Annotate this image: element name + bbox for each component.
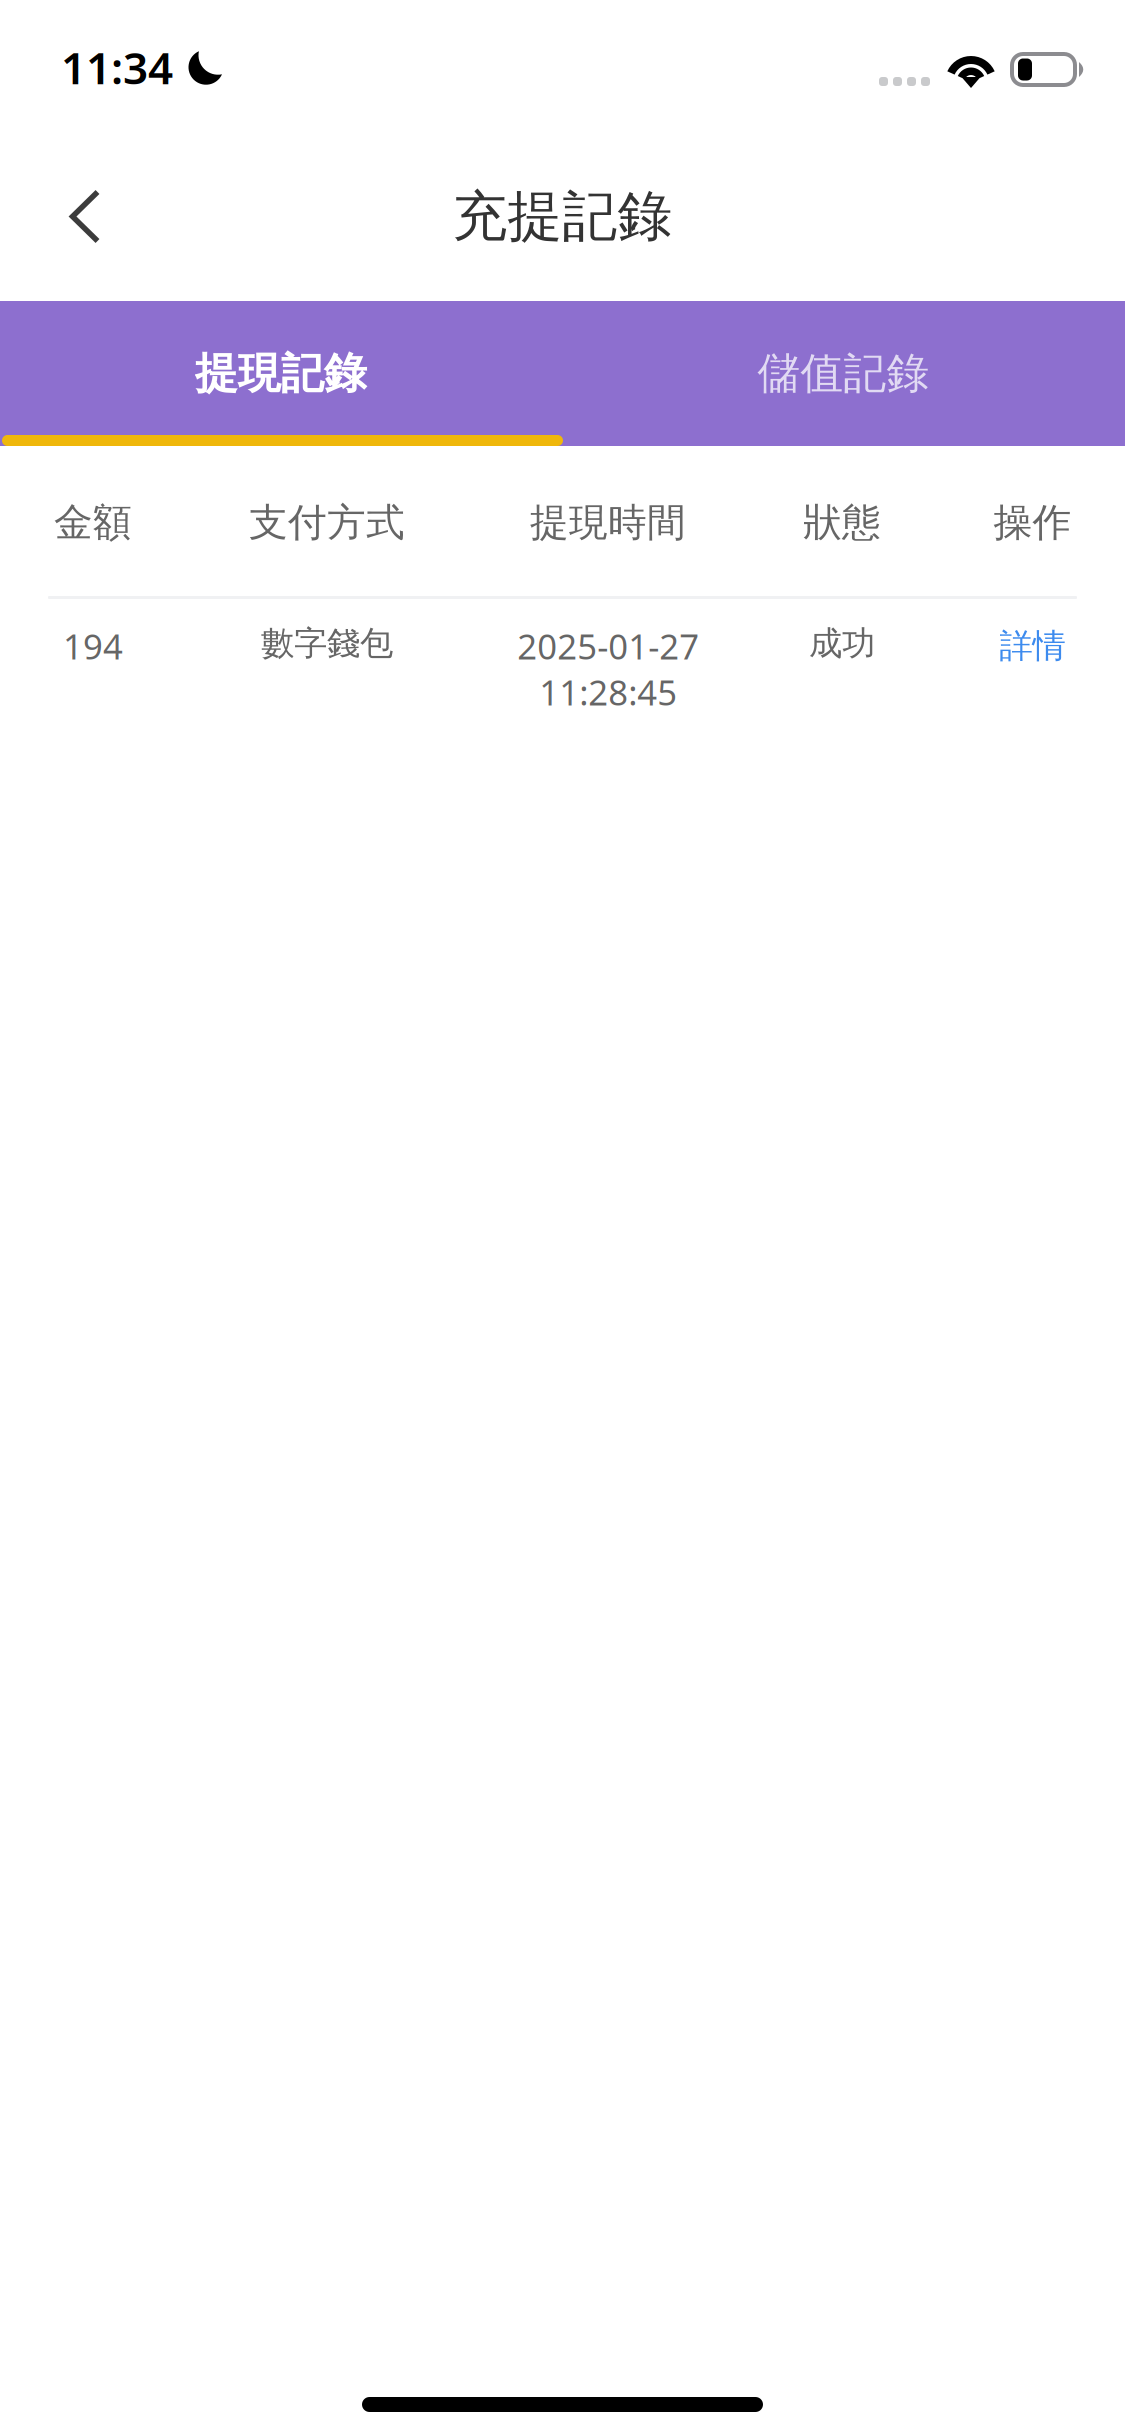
button[interactable]: 儲值記錄 [562, 301, 1125, 446]
staticText: 金額 [54, 499, 132, 546]
button[interactable]: 提現記錄 [0, 301, 562, 446]
button[interactable]: Back [30, 156, 140, 276]
staticText: 操作 [993, 499, 1071, 546]
staticText: 詳情 [999, 625, 1065, 666]
staticText: 充提記錄 [452, 183, 672, 250]
staticText: 支付方式 [249, 499, 405, 546]
staticText: 提現時間 [530, 499, 686, 546]
staticText: 成功 [809, 623, 875, 664]
staticText: 194 [63, 623, 123, 669]
staticText: 數字錢包 [261, 623, 393, 664]
staticText: 11:34 [61, 38, 173, 96]
staticText: 儲值記錄 [757, 347, 929, 400]
staticText: 提現記錄 [195, 347, 367, 400]
staticText: 2025-01-27 11:28:45 [517, 623, 699, 715]
staticText: 狀態 [803, 499, 881, 546]
button[interactable]: 詳情 [947, 623, 1117, 669]
